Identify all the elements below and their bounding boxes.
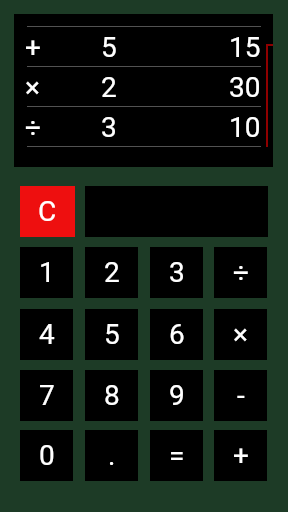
button[interactable]: 6 <box>150 309 203 360</box>
button[interactable]: C <box>20 186 75 237</box>
button[interactable]: × <box>214 309 267 360</box>
staticText: 5 <box>101 31 117 64</box>
staticText: 8 <box>104 379 120 412</box>
button[interactable]: . <box>85 430 138 481</box>
staticText: C <box>38 195 57 228</box>
button[interactable]: 8 <box>85 370 138 421</box>
staticText: 2 <box>101 71 117 104</box>
button[interactable]: 7 <box>20 370 73 421</box>
staticText: × <box>233 318 248 351</box>
button[interactable]: 5 <box>85 309 138 360</box>
button[interactable]: 2 <box>85 247 138 298</box>
staticText: 7 <box>39 379 55 412</box>
staticText: + <box>25 31 41 64</box>
button[interactable]: 1 <box>20 247 73 298</box>
button[interactable]: 3 <box>150 247 203 298</box>
staticText: ÷ <box>25 111 41 144</box>
staticText: 9 <box>169 379 185 412</box>
button[interactable]: = <box>150 430 203 481</box>
staticText: 5 <box>104 318 120 351</box>
staticText: = <box>169 439 185 472</box>
staticText: - <box>237 379 245 412</box>
button[interactable]: - <box>214 370 267 421</box>
staticText: + <box>233 439 249 472</box>
button[interactable]: ÷ <box>214 247 267 298</box>
staticText: 2 <box>104 256 120 289</box>
button[interactable]: 0 <box>20 430 73 481</box>
staticText: 30 <box>229 71 261 104</box>
staticText: ÷ <box>233 256 249 289</box>
button[interactable]: + <box>214 430 267 481</box>
staticText: × <box>25 71 40 104</box>
button[interactable]: 9 <box>150 370 203 421</box>
staticText: 0 <box>39 439 55 472</box>
staticText: 1 <box>39 256 55 289</box>
staticText: 15 <box>229 31 261 64</box>
button[interactable]: 4 <box>20 309 73 360</box>
staticText: 10 <box>229 111 261 144</box>
staticText: . <box>108 439 116 472</box>
staticText: 3 <box>169 256 185 289</box>
staticText: 4 <box>39 318 55 351</box>
staticText: 6 <box>169 318 185 351</box>
staticText: 3 <box>101 111 117 144</box>
